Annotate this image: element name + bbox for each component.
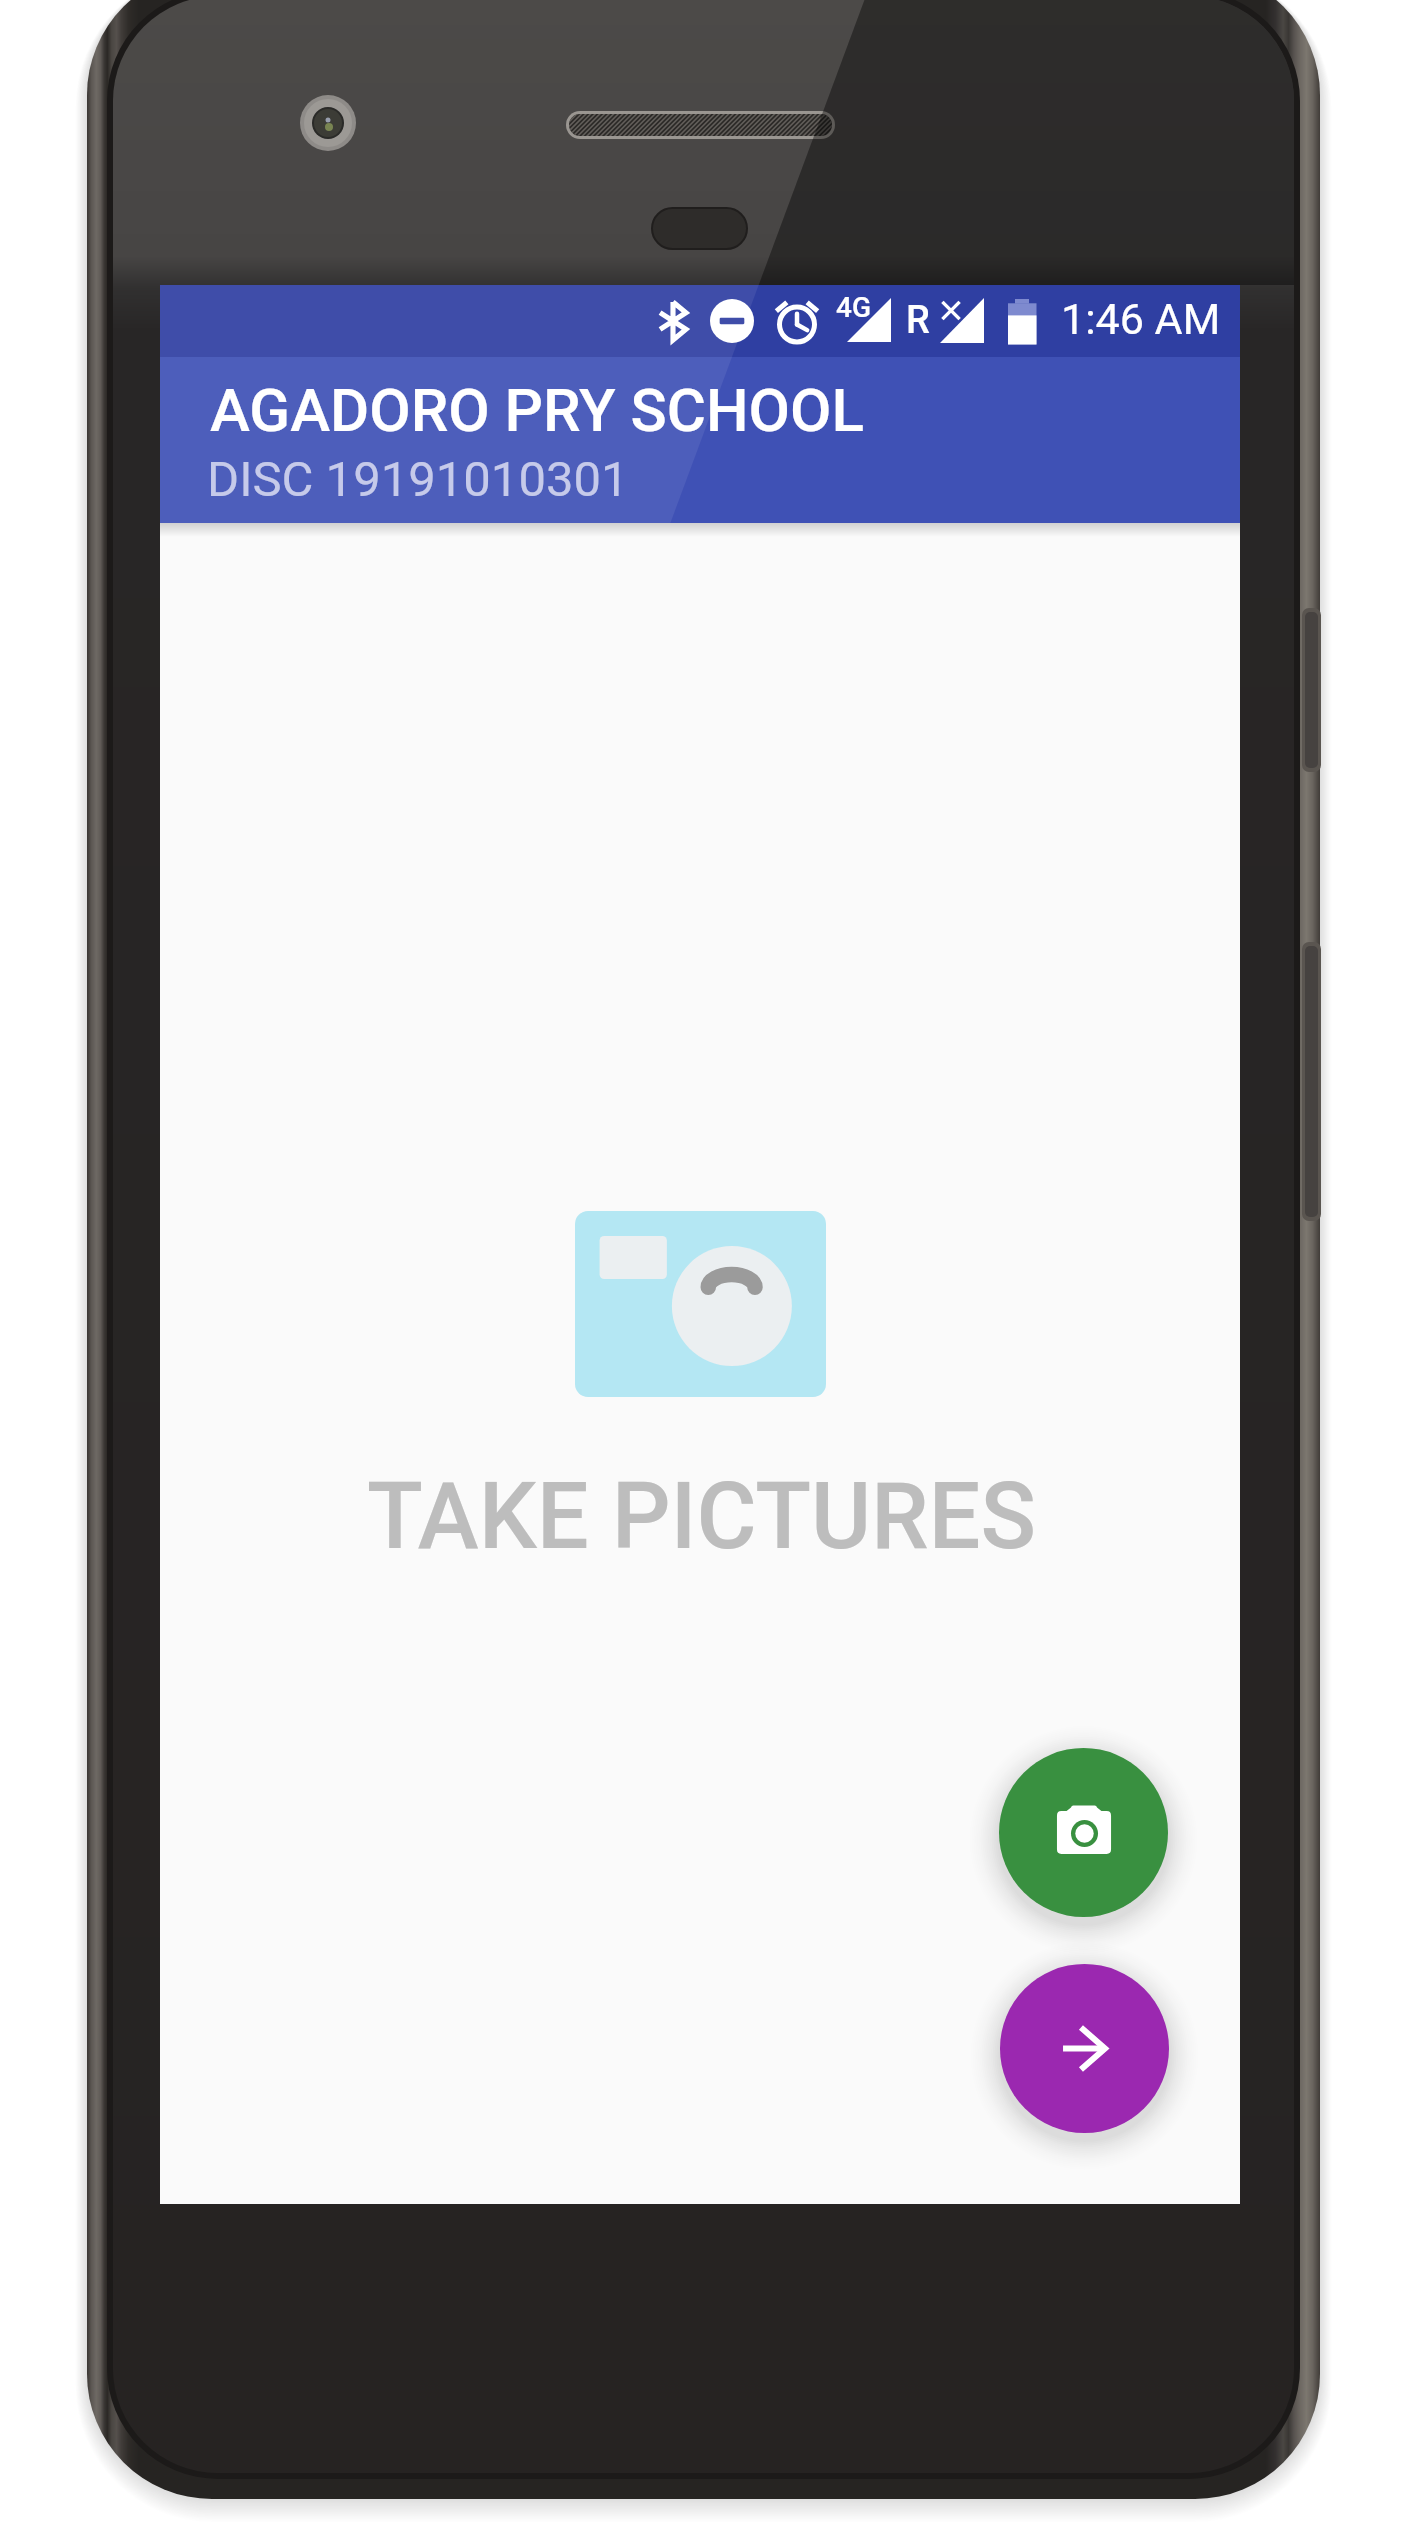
staticText: 4G: [836, 291, 871, 324]
staticText: TAKE PICTURES: [367, 1463, 1037, 1571]
button[interactable]: Take picture: [999, 1748, 1168, 1917]
staticText: DISC 19191010301: [207, 451, 629, 508]
staticText: R: [906, 298, 930, 343]
staticText: AGADORO PRY SCHOOL: [210, 375, 864, 445]
button[interactable]: Next: [1000, 1964, 1169, 2133]
staticText: 1:46 AM: [1061, 294, 1221, 344]
